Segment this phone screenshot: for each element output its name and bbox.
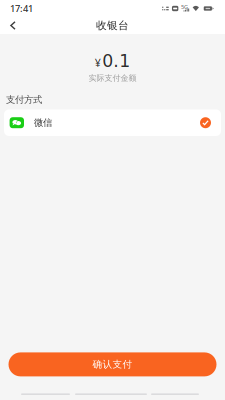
staticText: 确认支付 [92, 358, 132, 370]
staticText: 微信 [34, 117, 52, 128]
button[interactable]: 微信 [4, 109, 221, 136]
staticText: 收银台 [96, 19, 129, 32]
staticText: 支付方式 [6, 94, 42, 105]
button[interactable]: Back [0, 17, 24, 34]
staticText: 0.1 [102, 51, 130, 71]
staticText: 5G [181, 3, 188, 11]
button[interactable]: 确认支付 [8, 352, 216, 376]
staticText: 17:41 [10, 2, 33, 15]
staticText: 实际支付金额 [88, 73, 136, 83]
staticText: ¥ [95, 55, 101, 70]
